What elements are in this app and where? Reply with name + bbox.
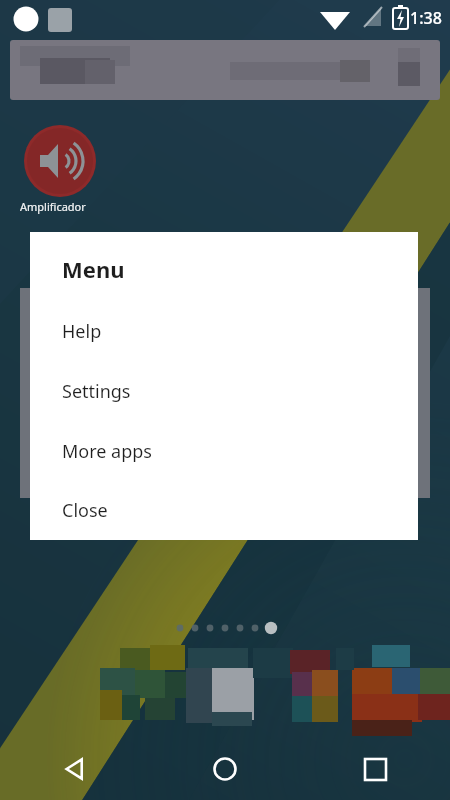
staticText: Help bbox=[62, 319, 102, 344]
staticText: Close bbox=[62, 498, 108, 523]
button[interactable]: Help bbox=[30, 301, 418, 361]
staticText: More apps bbox=[62, 439, 152, 464]
staticText: 1:38 bbox=[410, 7, 442, 29]
button[interactable]: More apps bbox=[30, 421, 418, 481]
staticText: Menu bbox=[62, 254, 125, 284]
button[interactable]: Amplificador d.. bbox=[20, 125, 100, 214]
button[interactable]: Settings bbox=[30, 361, 418, 421]
button[interactable]: Recent apps bbox=[300, 738, 450, 800]
button[interactable]: Back bbox=[0, 738, 150, 800]
button[interactable]: Home bbox=[150, 738, 300, 800]
staticText: Amplificador d.. bbox=[20, 199, 100, 214]
staticText: Settings bbox=[62, 379, 131, 404]
button[interactable]: Search bbox=[10, 40, 440, 100]
button[interactable]: Close bbox=[30, 481, 418, 540]
